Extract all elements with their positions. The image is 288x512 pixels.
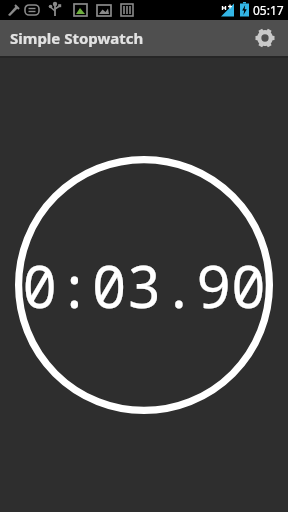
staticText: Simple Stopwatch — [10, 28, 144, 48]
button[interactable]: Settings — [250, 23, 280, 53]
staticText: 05:17 — [253, 2, 284, 18]
staticText: 0:03.90 — [22, 246, 266, 325]
button[interactable]: 0:03.90 — [15, 156, 273, 414]
button[interactable]: 0:03.90 — [0, 58, 288, 512]
